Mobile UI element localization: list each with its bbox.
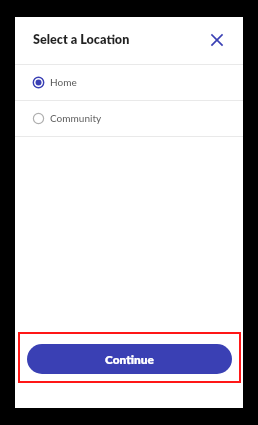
button[interactable]: Home [15, 65, 243, 100]
button[interactable]: Continue [27, 344, 232, 374]
staticText: Community [50, 112, 102, 124]
staticText: Select a Location [33, 32, 130, 47]
staticText: Continue [105, 352, 154, 366]
button[interactable]: Community [15, 101, 243, 136]
button[interactable]: Close [204, 28, 230, 54]
staticText: Home [50, 76, 77, 88]
